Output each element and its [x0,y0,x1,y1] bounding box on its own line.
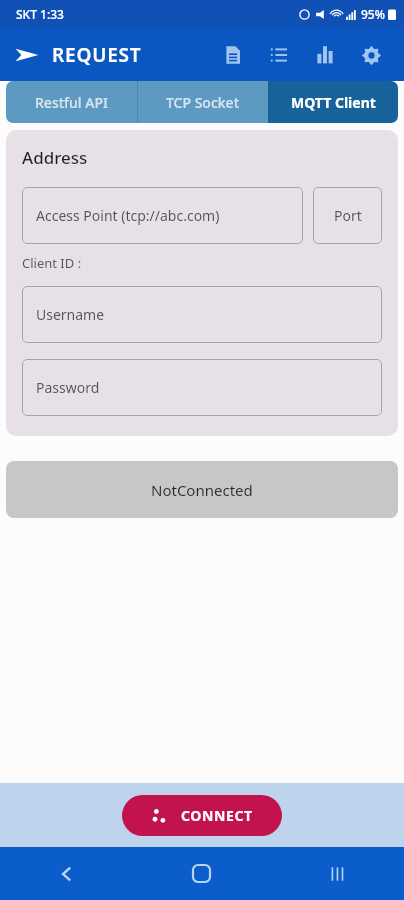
button[interactable]: Port [313,187,382,244]
staticText: 95% [361,6,385,22]
button[interactable]: Recent apps [269,847,404,900]
button[interactable]: Username [22,286,382,343]
staticText: Username [36,305,105,324]
staticText: MQTT Client [291,93,376,112]
staticText: SKT 1:33 [16,6,64,22]
button[interactable]: Password [22,359,382,416]
staticText: Address [22,146,88,169]
staticText: Restful API [35,93,108,112]
staticText: Client ID : [22,254,82,272]
button[interactable]: Settings [356,40,386,70]
staticText: Port [334,206,362,225]
button[interactable]: Back [0,847,134,900]
button[interactable]: List [264,40,294,70]
button[interactable]: Home [134,847,269,900]
button[interactable]: MQTT Client [268,81,398,123]
button[interactable]: TCP Socket [138,81,268,123]
button[interactable]: CONNECT [122,795,282,836]
button[interactable]: NotConnected [6,461,398,518]
staticText: Password [36,378,100,397]
staticText: REQUEST [52,42,142,68]
button[interactable]: Documents [218,40,248,70]
staticText: CONNECT [181,806,253,825]
staticText: NotConnected [151,480,253,500]
button[interactable]: REQUEST [0,42,150,68]
staticText: TCP Socket [166,93,240,112]
button[interactable]: Access Point (tcp://abc.com) [22,187,303,244]
button[interactable]: Restful API [6,81,137,123]
button[interactable]: Statistics [310,40,340,70]
staticText: Access Point (tcp://abc.com) [36,206,220,225]
